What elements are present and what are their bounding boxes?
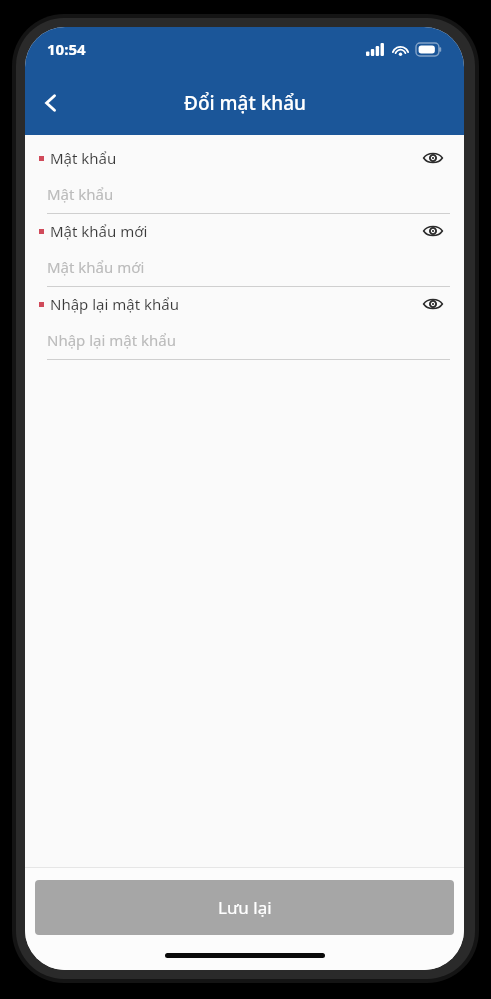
button[interactable]: Show password — [416, 287, 450, 321]
button[interactable]: Show password — [416, 214, 450, 248]
staticText: 10:54 — [47, 39, 86, 59]
button[interactable]: Nhập lại mật khẩu — [25, 321, 464, 359]
button[interactable]: Back — [25, 71, 77, 135]
staticText: Mật khẩu — [50, 148, 117, 168]
staticText: Mật khẩu mới — [47, 257, 145, 277]
button[interactable]: Mật khẩu mới — [25, 248, 464, 286]
staticText: Mật khẩu mới — [50, 221, 148, 241]
staticText: Lưu lại — [218, 896, 272, 919]
staticText: Nhập lại mật khẩu — [50, 294, 179, 314]
staticText: Nhập lại mật khẩu — [47, 330, 176, 350]
staticText: Đổi mật khẩu — [184, 90, 306, 116]
staticText: Mật khẩu — [47, 184, 114, 204]
button[interactable]: Lưu lại — [35, 880, 454, 935]
button[interactable]: Mật khẩu — [25, 175, 464, 213]
button[interactable]: Show password — [416, 141, 450, 175]
